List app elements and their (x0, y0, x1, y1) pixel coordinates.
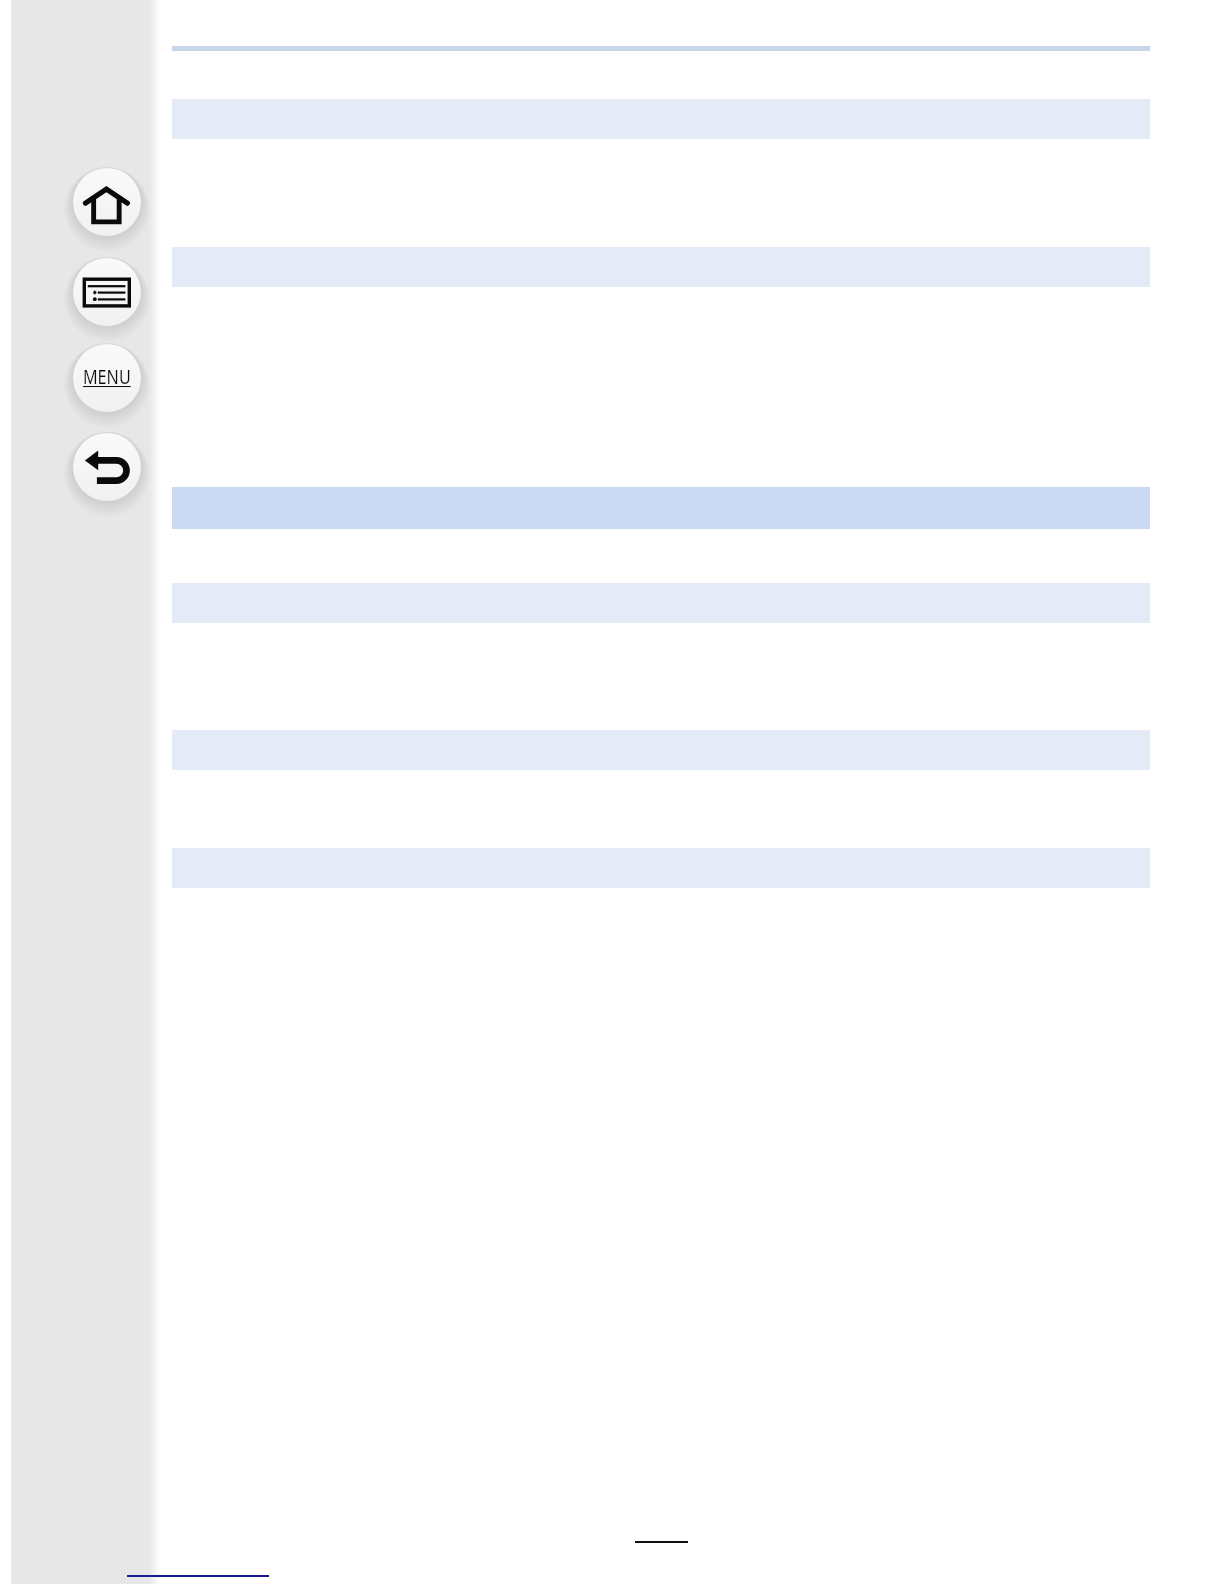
button[interactable]: Home (73, 168, 141, 236)
button[interactable]: Menu (73, 344, 141, 412)
staticText: MENU (83, 363, 131, 390)
button[interactable]: Back (73, 433, 141, 501)
button[interactable]: Recording information (73, 258, 141, 326)
